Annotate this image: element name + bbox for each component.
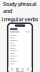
- button[interactable]: Tab: [20, 67, 25, 72]
- staticText: Study phrasal and: [3, 0, 37, 15]
- button[interactable]: Tab: [15, 67, 20, 72]
- button[interactable]: Tab: [10, 67, 15, 72]
- button[interactable]: Tab: [25, 67, 30, 72]
- staticText: irregular verbs: [1, 15, 38, 23]
